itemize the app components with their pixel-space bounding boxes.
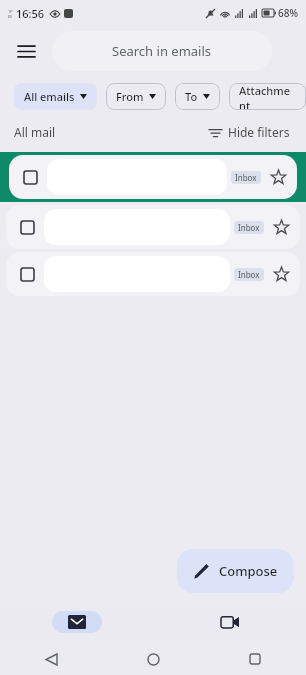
button[interactable]: Select conversation <box>17 164 43 190</box>
staticText: All emails <box>24 89 75 104</box>
staticText: From <box>116 89 144 104</box>
button[interactable]: Compose <box>177 549 294 593</box>
button[interactable]: Back <box>36 644 66 674</box>
button[interactable]: Select conversation <box>14 214 40 240</box>
button[interactable]: Meet <box>205 611 255 633</box>
staticText: 1P <box>8 9 13 14</box>
staticText: Attachment <box>239 83 296 110</box>
button[interactable]: Select conversation <box>6 252 300 296</box>
button[interactable]: Home <box>138 644 168 674</box>
button[interactable]: Star conversation <box>270 216 292 238</box>
staticText: Search in emails <box>112 42 212 60</box>
button[interactable]: Attachment <box>229 83 306 110</box>
staticText: 68% <box>278 6 298 20</box>
button[interactable]: Star conversation <box>267 166 289 188</box>
button[interactable]: To <box>175 83 220 110</box>
button[interactable]: Hide filters <box>207 124 292 140</box>
button[interactable]: Star conversation <box>270 263 292 285</box>
staticText: Inbox <box>238 222 260 233</box>
staticText: Inbox <box>235 172 257 183</box>
button[interactable]: Mail <box>52 611 102 633</box>
button[interactable]: Recent apps <box>240 644 270 674</box>
staticText: EE <box>8 14 13 19</box>
staticText: Hide filters <box>228 124 290 140</box>
button[interactable]: From <box>106 83 166 110</box>
staticText: All mail <box>14 124 56 140</box>
staticText: Compose <box>219 562 278 580</box>
button[interactable]: Select conversation <box>9 155 297 199</box>
staticText: 16:56 <box>16 6 45 21</box>
button[interactable]: Open navigation menu <box>8 33 44 69</box>
staticText: To <box>185 89 198 104</box>
button[interactable]: Select conversation <box>6 205 300 249</box>
button[interactable]: Search in emails <box>52 31 272 71</box>
staticText: Inbox <box>238 269 260 280</box>
button[interactable]: All emails <box>14 83 97 110</box>
button[interactable]: Select conversation <box>14 261 40 287</box>
